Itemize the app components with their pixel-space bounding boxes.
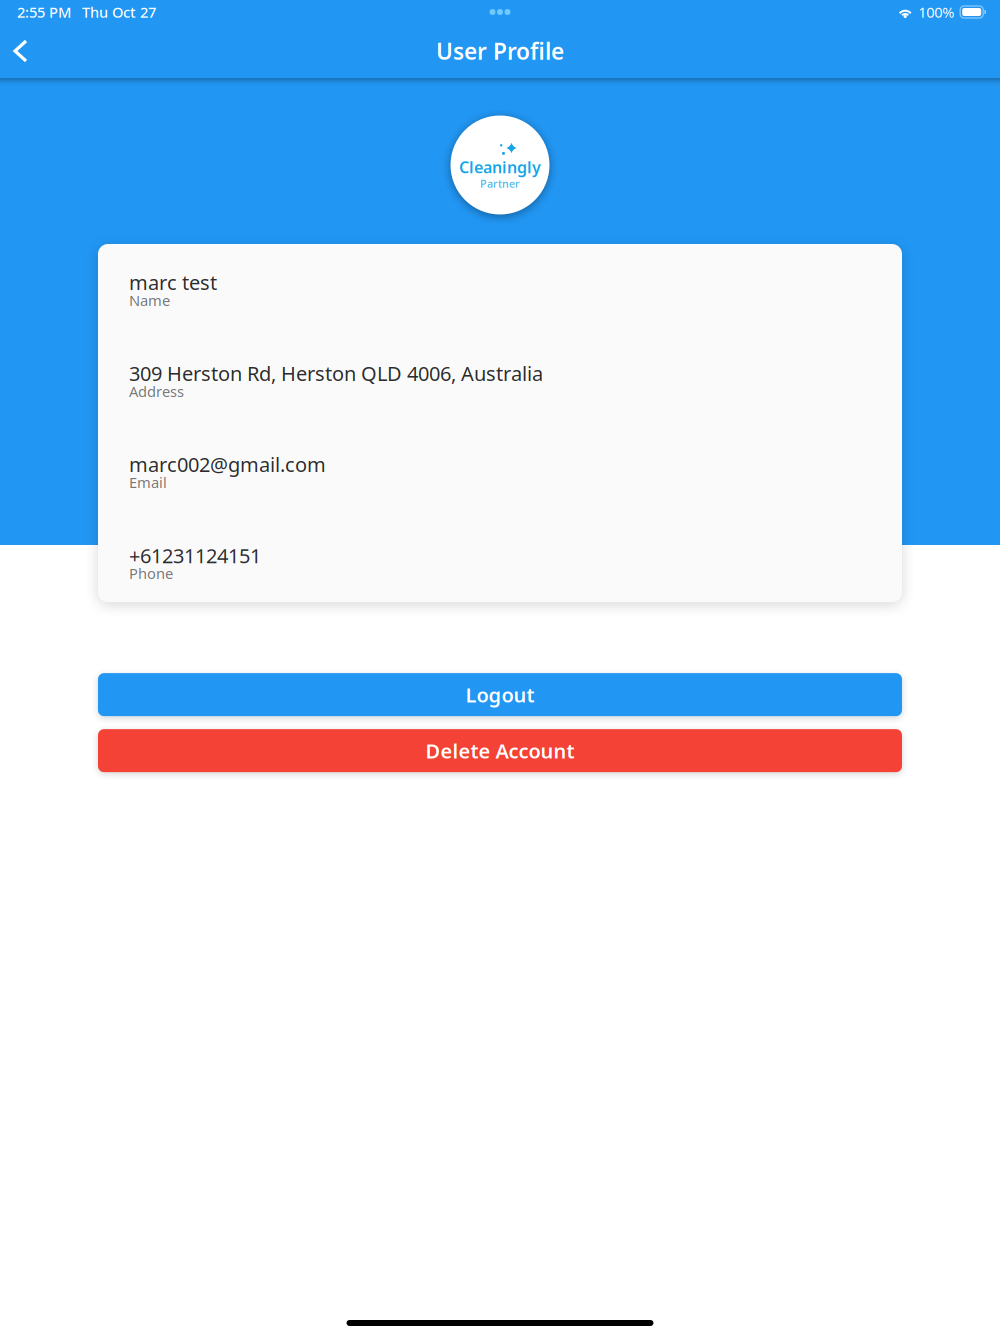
staticText: Thu Oct 27 [82,2,156,22]
staticText: Logout [465,681,534,708]
staticText: User Profile [436,36,564,66]
button[interactable]: Logout [98,673,902,716]
staticText: Name [129,291,170,310]
staticText: Phone [129,564,173,583]
staticText: 309 Herston Rd, Herston QLD 4006, Austra… [129,360,543,387]
staticText: Address [129,382,184,401]
staticText: marc002@gmail.com [129,451,326,478]
staticText: Delete Account [425,737,574,764]
button[interactable]: Delete Account [98,729,902,772]
staticText: marc test [129,269,217,296]
staticText: Partner [480,176,520,191]
staticText: Email [129,473,167,492]
staticText: 2:55 PM [17,2,71,22]
staticText: 100% [918,2,954,22]
button[interactable]: Back [0,29,42,73]
staticText: +61231124151 [129,542,261,569]
staticText: Cleaningly [459,156,541,178]
